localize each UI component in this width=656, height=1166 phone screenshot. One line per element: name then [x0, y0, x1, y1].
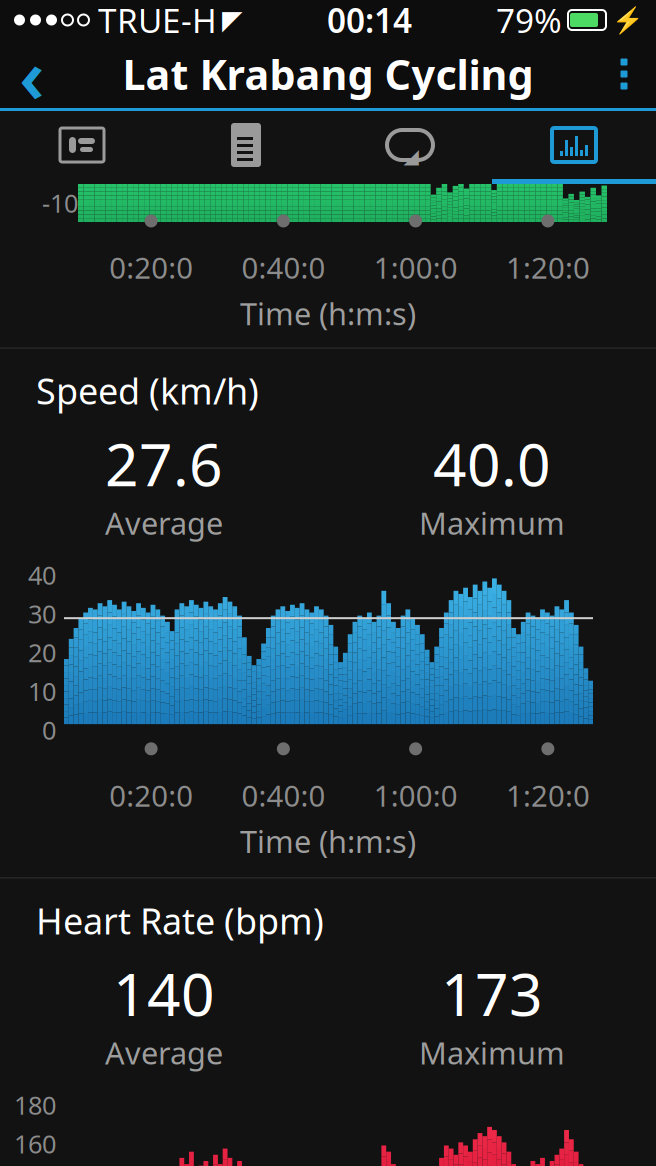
staticText: -10	[42, 186, 78, 220]
staticText: ◤	[222, 5, 243, 35]
staticText: Maximum	[419, 502, 565, 543]
staticText: 40.0	[433, 424, 551, 502]
button[interactable]: Charts	[492, 111, 656, 179]
staticText: 1:00:0	[374, 776, 458, 815]
staticText: 0:20:0	[109, 776, 193, 815]
staticText: 1:00:0	[374, 248, 458, 287]
staticText: 0:40:0	[241, 248, 325, 287]
staticText: 140	[113, 954, 215, 1032]
staticText: 1:20:0	[506, 248, 590, 287]
staticText: ‹	[19, 24, 45, 124]
button[interactable]: Back	[0, 40, 64, 108]
staticText: Average	[105, 1032, 223, 1073]
staticText: 0:20:0	[109, 248, 193, 287]
staticText: Heart Rate (bpm)	[36, 896, 324, 944]
staticText: ⚡	[612, 5, 644, 34]
staticText: 30	[28, 597, 56, 630]
staticText: Lat Krabang Cycling	[122, 47, 533, 101]
staticText: Average	[105, 502, 223, 543]
staticText: Maximum	[419, 1032, 565, 1073]
staticText: 180	[14, 1088, 56, 1122]
staticText: 00:14	[327, 0, 412, 42]
staticText: TRUE-H	[98, 0, 217, 42]
staticText: 40	[28, 558, 56, 592]
staticText: 0	[42, 713, 56, 747]
staticText: Speed (km/h)	[36, 367, 259, 414]
staticText: Time (h:m:s)	[240, 293, 416, 334]
staticText: 20	[28, 636, 56, 669]
button[interactable]: Laps	[328, 111, 492, 179]
staticText: 10	[28, 674, 56, 708]
staticText: 173	[441, 954, 543, 1032]
button[interactable]: Map	[0, 111, 164, 179]
staticText: Time (h:m:s)	[240, 821, 416, 861]
staticText: 27.6	[105, 424, 223, 502]
staticText: 1:20:0	[506, 776, 590, 815]
staticText: ◢	[403, 145, 418, 167]
staticText: 79%	[496, 0, 562, 42]
staticText: 0:40:0	[241, 776, 325, 815]
button[interactable]: More options	[592, 40, 656, 108]
staticText: 160	[14, 1127, 56, 1160]
button[interactable]: Details	[164, 111, 328, 179]
